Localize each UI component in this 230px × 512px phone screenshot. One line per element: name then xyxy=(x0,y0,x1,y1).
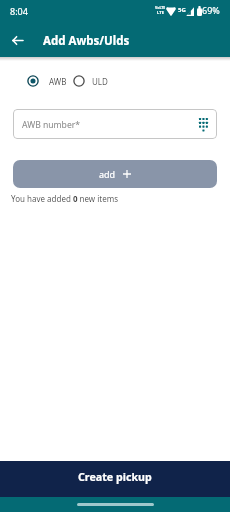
staticText: LTE xyxy=(157,10,165,16)
staticText: AWB number* xyxy=(22,119,81,131)
button[interactable]: Create pickup xyxy=(0,461,230,497)
staticText: add xyxy=(99,168,116,180)
staticText: You have added 0 new items xyxy=(11,193,119,204)
button[interactable]: Open dialpad xyxy=(195,115,213,133)
button[interactable]: Back xyxy=(6,29,28,51)
button[interactable]: ULD xyxy=(73,75,108,87)
staticText: Add Awbs/Ulds xyxy=(43,33,130,49)
button[interactable]: AWB xyxy=(27,75,67,87)
button[interactable]: AWB number* xyxy=(13,109,217,139)
staticText: ULD xyxy=(92,76,108,87)
staticText: AWB xyxy=(49,76,67,87)
staticText: 5G xyxy=(178,6,186,14)
staticText: 69% xyxy=(202,4,220,16)
button[interactable]: add xyxy=(13,160,217,188)
staticText: Create pickup xyxy=(78,470,152,485)
staticText: 8:04 xyxy=(10,5,28,17)
staticText: VoLTE xyxy=(155,5,166,10)
